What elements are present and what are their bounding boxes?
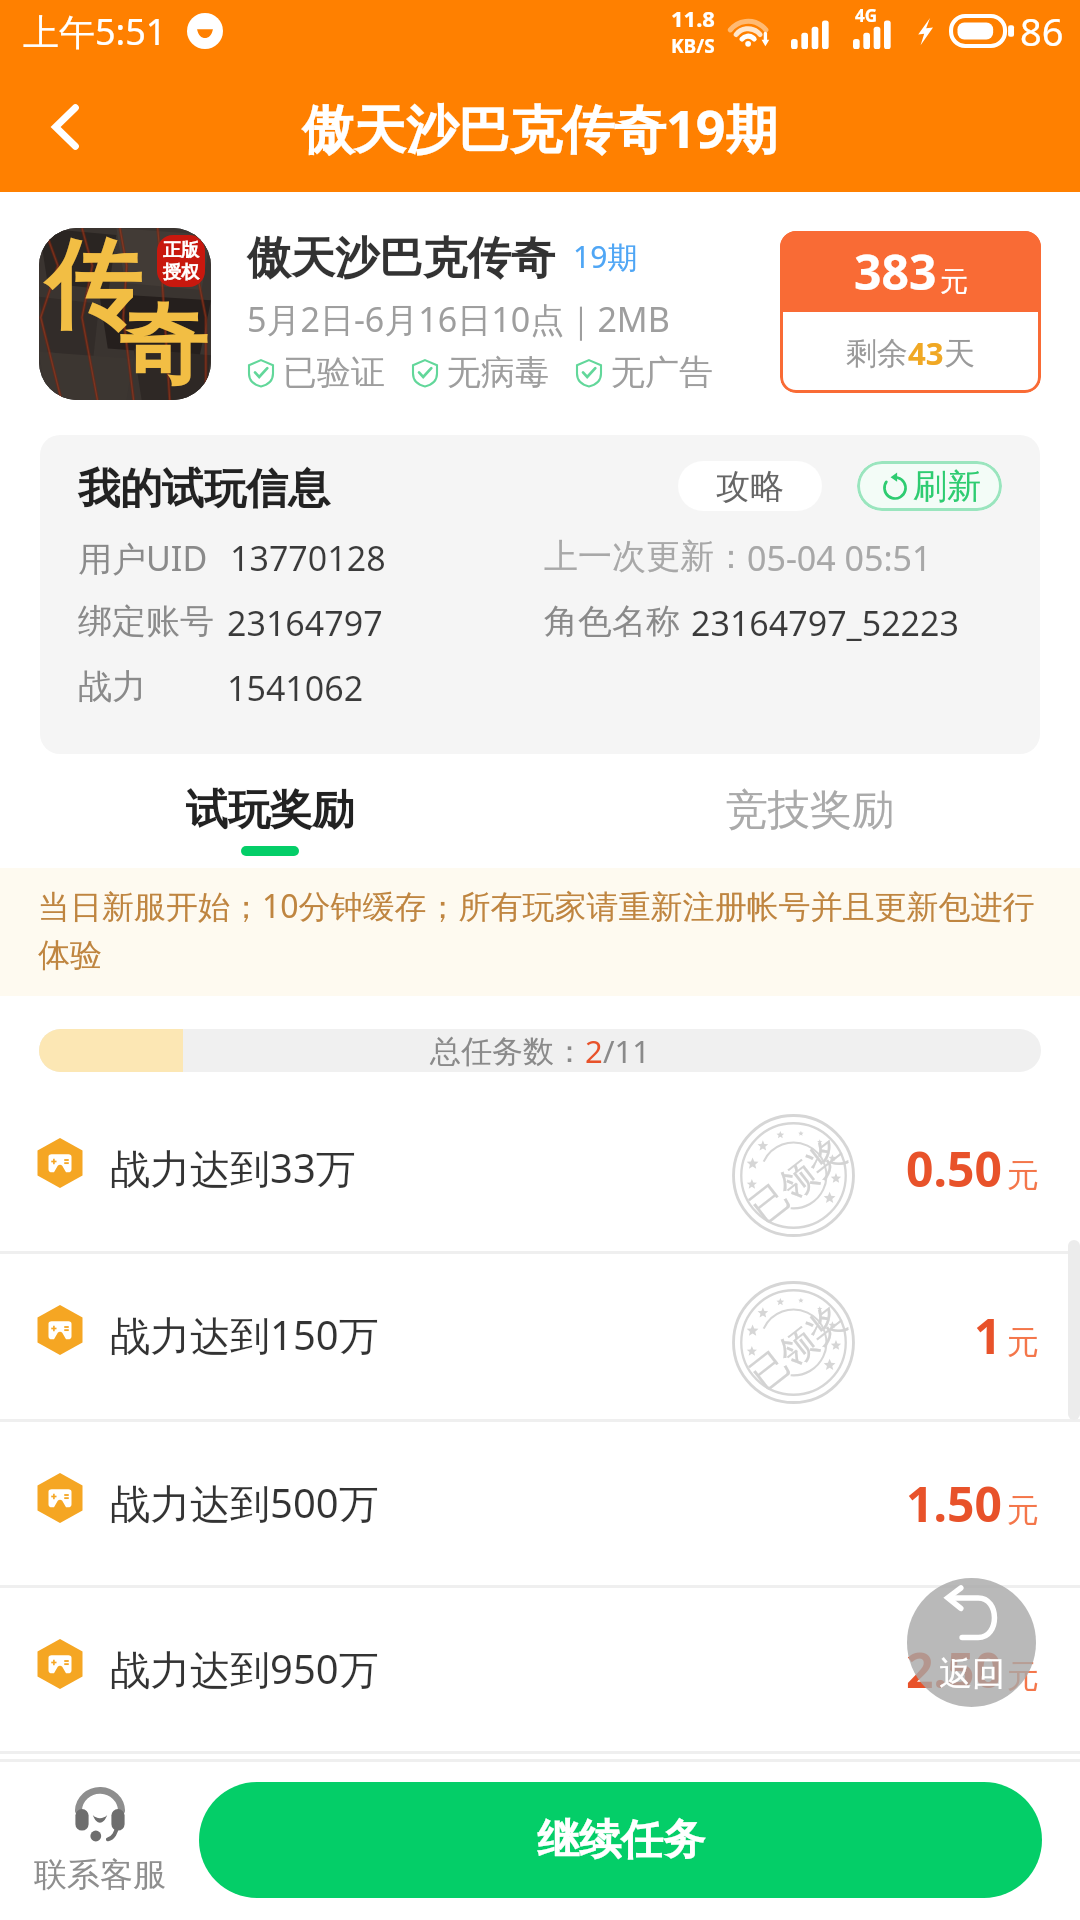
staticText: 无广告	[611, 351, 713, 394]
staticText: 天	[944, 334, 975, 373]
button[interactable]: 返回	[16, 77, 116, 177]
staticText: 战力达到950万	[110, 1641, 379, 1696]
staticText: 试玩奖励	[186, 784, 354, 837]
staticText: 战力	[78, 665, 146, 708]
button[interactable]: 继续任务	[199, 1782, 1042, 1898]
button[interactable]: 竞技奖励	[540, 754, 1080, 868]
staticText: 攻略	[716, 465, 784, 508]
staticText: 23164797	[227, 600, 383, 646]
staticText: 总任务数：	[430, 1032, 585, 1071]
staticText: 元	[1007, 1322, 1039, 1362]
staticText: 元	[1007, 1155, 1039, 1195]
staticText: 4G	[855, 4, 878, 27]
staticText: 383	[854, 239, 937, 304]
staticText: 2.50	[906, 1637, 1002, 1702]
button[interactable]: 试玩奖励	[0, 754, 540, 868]
button[interactable]: 刷新	[857, 461, 1002, 511]
staticText: KB/S	[671, 33, 715, 59]
staticText: 刷新	[913, 465, 981, 508]
staticText: 元	[1007, 1656, 1039, 1696]
staticText: 傲天沙巴克传奇	[247, 231, 555, 286]
staticText: 2	[585, 1030, 603, 1072]
staticText: 奇	[119, 290, 207, 400]
button[interactable]: 返回	[907, 1578, 1036, 1707]
staticText: 43	[908, 332, 944, 374]
staticText: 绑定账号	[78, 600, 214, 643]
staticText: 战力达到150万	[110, 1307, 379, 1362]
staticText: 元	[940, 264, 968, 299]
staticText: 元	[1007, 1490, 1039, 1530]
staticText: 上午5:51	[23, 7, 167, 56]
staticText: 战力达到500万	[110, 1475, 379, 1530]
staticText: 5月2日-6月16日10点｜2MB	[247, 296, 670, 342]
staticText: 我的试玩信息	[78, 463, 330, 516]
button[interactable]: 战力达到150万	[0, 1251, 1080, 1418]
button[interactable]: 联系客服	[33, 1788, 167, 1896]
staticText: 1	[974, 1303, 1002, 1368]
staticText: 传	[45, 228, 141, 347]
staticText: 用户UID	[78, 535, 208, 581]
button[interactable]: 攻略	[678, 461, 822, 511]
button[interactable]: 战力达到33万	[0, 1084, 1080, 1251]
staticText: 战力达到33万	[110, 1140, 356, 1195]
staticText: 1541062	[227, 665, 364, 711]
staticText: 已领奖	[741, 1129, 854, 1231]
staticText: 05-04 05:51	[747, 535, 932, 581]
staticText: 已领奖	[741, 1296, 854, 1398]
button[interactable]: 战力达到950万	[0, 1585, 1080, 1752]
staticText: 竞技奖励	[726, 784, 894, 837]
staticText: 11.8	[671, 3, 715, 33]
staticText: 86	[1020, 5, 1064, 57]
staticText: 1.50	[906, 1471, 1002, 1536]
staticText: 13770128	[230, 535, 386, 581]
button[interactable]: 游戏图标	[39, 228, 211, 400]
staticText: 剩余	[846, 334, 908, 373]
staticText: 正版 授权	[163, 239, 199, 283]
staticText: 继续任务	[537, 1814, 705, 1867]
staticText: 角色名称	[544, 600, 680, 643]
staticText: 上一次更新：	[544, 535, 748, 578]
staticText: /11	[603, 1030, 650, 1072]
button[interactable]: 战力达到500万	[0, 1419, 1080, 1586]
staticText: 19期	[573, 236, 638, 277]
staticText: 当日新服开始；10分钟缓存；所有玩家请重新注册帐号并且更新包进行体验	[38, 884, 1048, 975]
staticText: 无病毒	[447, 351, 549, 394]
staticText: 傲天沙巴克传奇19期	[302, 92, 778, 163]
staticText: 联系客服	[34, 1854, 166, 1896]
staticText: 23164797_52223	[691, 600, 959, 646]
staticText: 返回	[939, 1653, 1005, 1695]
staticText: 已验证	[283, 351, 385, 394]
staticText: 0.50	[906, 1136, 1002, 1201]
button[interactable]: 383	[780, 231, 1041, 393]
